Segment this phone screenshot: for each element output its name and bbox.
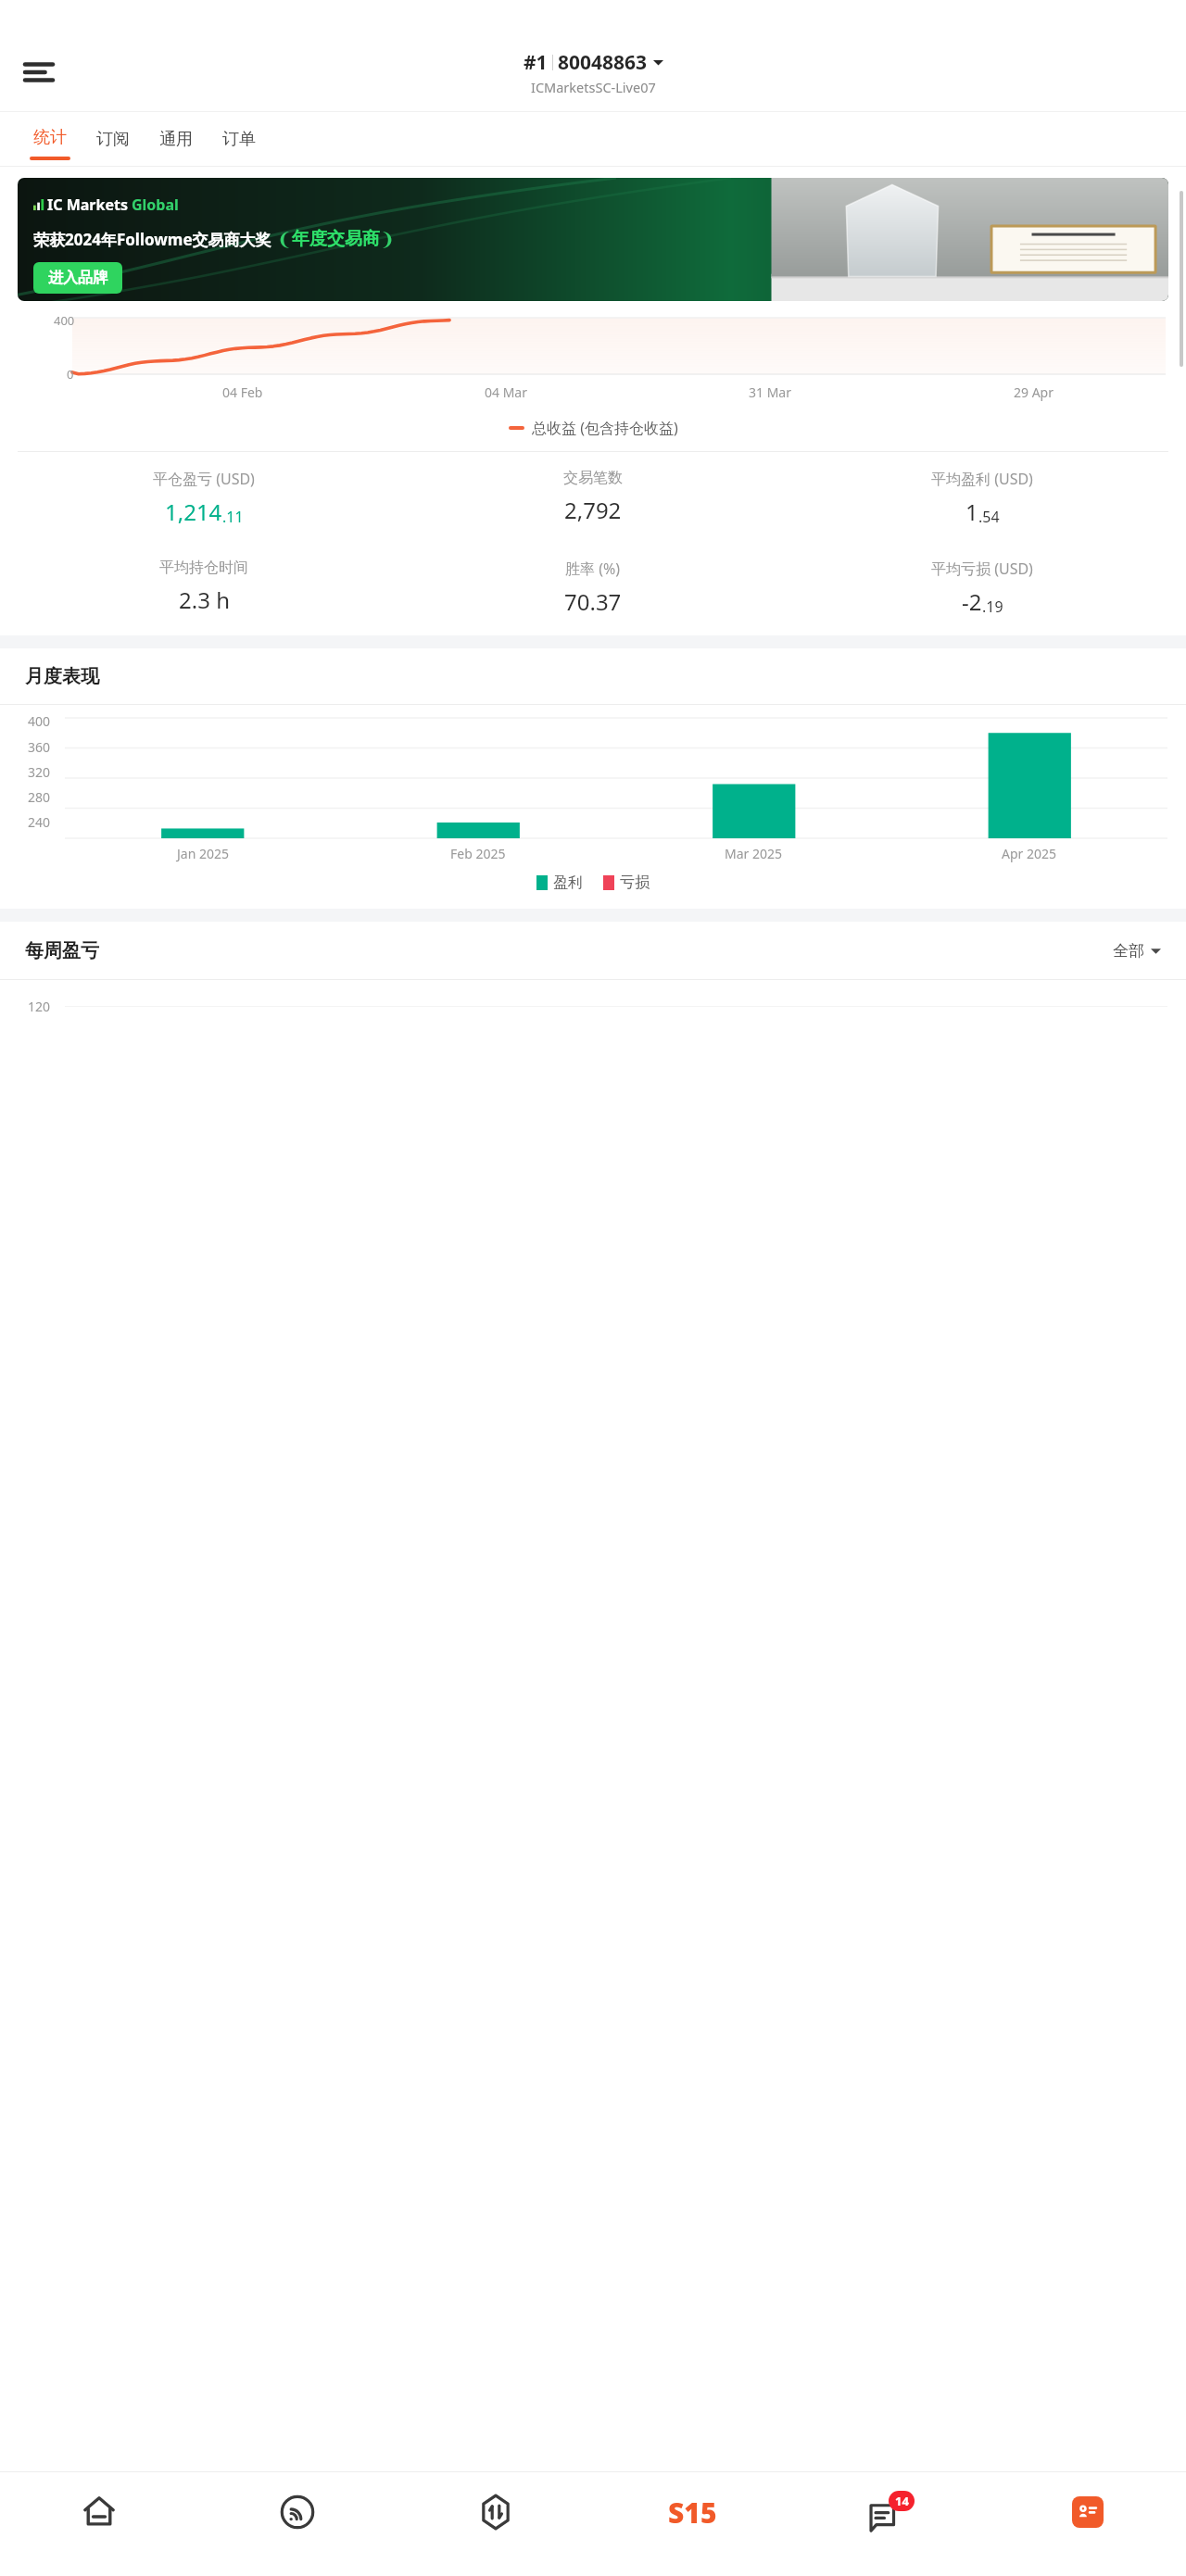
staticText: 订单 <box>222 129 256 150</box>
staticText: -2 <box>962 586 982 617</box>
button[interactable]: Home <box>0 2472 198 2576</box>
staticText: 总收益 (包含持仓收益) <box>532 418 678 438</box>
staticText: 14 <box>895 2493 909 2509</box>
staticText: Mar 2025 <box>725 845 783 862</box>
button[interactable]: 订单 <box>208 112 271 166</box>
staticText: ❨ <box>277 229 292 249</box>
staticText: 31 Mar <box>749 383 791 401</box>
button[interactable]: Profile <box>989 2472 1186 2576</box>
button[interactable]: IC Markets <box>18 178 1168 301</box>
staticText: 240 <box>28 813 51 831</box>
staticText: 1,214 <box>165 496 222 527</box>
button[interactable]: 通用 <box>145 112 208 166</box>
button[interactable]: Transfer <box>397 2472 594 2576</box>
staticText: 80048863 <box>558 49 648 76</box>
staticText: 平仓盈亏 (USD) <box>153 469 255 489</box>
staticText: 2.3 h <box>179 584 230 615</box>
staticText: 亏损 <box>620 873 650 892</box>
staticText: Feb 2025 <box>450 845 506 862</box>
staticText: 120 <box>28 998 51 1015</box>
button[interactable]: 统计 <box>19 112 82 166</box>
staticText: 320 <box>28 763 51 781</box>
staticText: 29 Apr <box>1014 383 1054 401</box>
staticText: 2,792 <box>564 495 622 525</box>
staticText: .54 <box>978 507 1000 527</box>
button[interactable]: Menu <box>13 46 65 98</box>
button[interactable]: 订阅 <box>82 112 145 166</box>
staticText: 70.37 <box>564 586 622 617</box>
button[interactable]: Signals <box>198 2472 397 2576</box>
staticText: IC Markets <box>47 195 128 215</box>
staticText: 0 <box>67 366 74 383</box>
staticText: ICMarketsSC-Live07 <box>531 78 656 96</box>
staticText: Global <box>132 195 179 215</box>
staticText: 04 Mar <box>485 383 527 401</box>
staticText: 400 <box>54 312 75 329</box>
staticText: 04 Feb <box>222 383 263 401</box>
staticText: 通用 <box>159 129 193 150</box>
staticText: 360 <box>28 738 51 756</box>
staticText: 月度表现 <box>25 665 99 688</box>
button[interactable]: #1 <box>524 49 663 96</box>
staticText: Apr 2025 <box>1002 845 1057 862</box>
staticText: 进入品牌 <box>48 269 107 287</box>
staticText: S15 <box>668 2494 717 2532</box>
staticText: .11 <box>222 507 244 527</box>
staticText: 胜率 (%) <box>565 559 621 579</box>
staticText: 平均亏损 (USD) <box>931 559 1033 579</box>
staticText: #1 <box>524 49 548 76</box>
staticText: 订阅 <box>96 129 130 150</box>
staticText: ❩ <box>380 229 395 249</box>
button[interactable]: 全部 <box>1113 941 1161 961</box>
staticText: 盈利 <box>553 873 583 892</box>
staticText: 400 <box>28 712 51 730</box>
staticText: 荣获2024年Followme交易商大奖 <box>33 229 271 250</box>
staticText: 1 <box>965 496 978 527</box>
staticText: 统计 <box>33 127 67 148</box>
button[interactable]: 进入品牌 <box>33 262 122 294</box>
staticText: 平均盈利 (USD) <box>931 469 1033 489</box>
staticText: .19 <box>982 597 1003 617</box>
staticText: 280 <box>28 788 51 806</box>
staticText: 每周盈亏 <box>25 939 99 962</box>
staticText: 全部 <box>1113 941 1144 961</box>
staticText: Jan 2025 <box>177 845 229 862</box>
button[interactable]: Messages, 14 unread <box>791 2472 989 2576</box>
button[interactable]: S15 <box>594 2472 791 2576</box>
staticText: 年度交易商 <box>292 228 380 250</box>
staticText: 交易笔数 <box>563 469 623 487</box>
staticText: 平均持仓时间 <box>159 559 248 577</box>
